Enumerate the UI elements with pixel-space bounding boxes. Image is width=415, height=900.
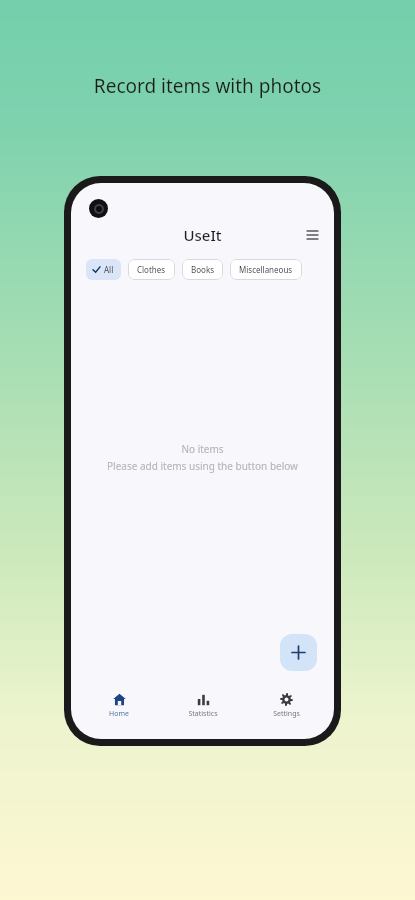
staticText: Clothes: [137, 264, 166, 275]
button[interactable]: Clothes: [128, 259, 175, 280]
staticText: UseIt: [183, 225, 222, 245]
button[interactable]: Settings: [251, 691, 321, 721]
staticText: Home: [109, 709, 129, 719]
staticText: Statistics: [188, 709, 218, 719]
staticText: No items: [181, 442, 224, 456]
staticText: Please add items using the button below: [107, 459, 298, 473]
button[interactable]: Books: [182, 259, 223, 280]
staticText: Miscellaneous: [239, 264, 293, 275]
button[interactable]: Add item: [280, 634, 317, 671]
button[interactable]: Menu: [300, 223, 324, 247]
button[interactable]: Miscellaneous: [230, 259, 302, 280]
staticText: All: [104, 264, 114, 275]
staticText: Books: [191, 264, 214, 275]
staticText: Settings: [273, 709, 300, 719]
button[interactable]: All: [86, 259, 121, 280]
staticText: Record items with photos: [0, 73, 415, 99]
button[interactable]: Statistics: [168, 691, 238, 721]
button[interactable]: Home: [84, 691, 154, 721]
